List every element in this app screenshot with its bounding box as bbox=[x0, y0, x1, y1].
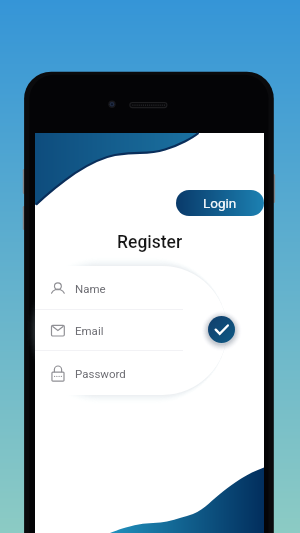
staticText: Register bbox=[117, 232, 183, 253]
button[interactable]: Confirm registration bbox=[208, 316, 235, 343]
staticText: Login bbox=[203, 195, 237, 211]
staticText: Email bbox=[75, 324, 104, 337]
button[interactable]: Login bbox=[176, 190, 264, 216]
button[interactable]: Name bbox=[35, 266, 227, 310]
button[interactable]: Email bbox=[35, 310, 227, 351]
button[interactable]: Password bbox=[35, 351, 227, 395]
staticText: Password bbox=[75, 367, 126, 380]
staticText: Name bbox=[75, 282, 106, 295]
